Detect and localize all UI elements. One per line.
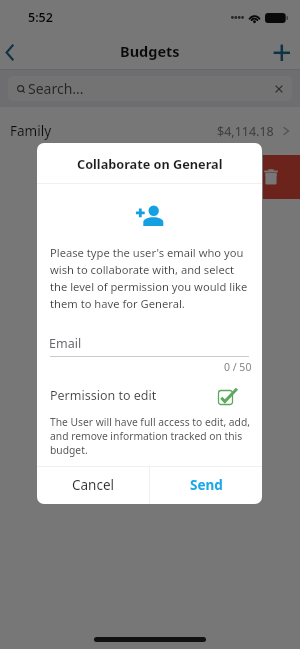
button[interactable]: Send (150, 466, 262, 504)
staticText: Email (49, 335, 82, 352)
staticText: 5:52 (28, 9, 53, 26)
staticText: Family (10, 122, 52, 140)
staticText: 0 / 50 (224, 360, 252, 374)
staticText: Collaborate on General (77, 155, 223, 172)
button[interactable]: Permission to edit (50, 384, 238, 406)
staticText: Permission to edit (50, 387, 157, 404)
button[interactable]: Delete (263, 155, 300, 199)
button[interactable]: Search... (8, 76, 292, 101)
staticText: $4,114.18 (217, 123, 274, 140)
staticText: Cancel (72, 476, 115, 494)
button[interactable]: Add budget (268, 37, 296, 65)
staticText: The User will have full access to edit, … (50, 415, 253, 457)
button[interactable]: Clear search (272, 82, 286, 96)
staticText: Budgets (120, 41, 180, 61)
button[interactable]: Cancel (37, 466, 149, 504)
staticText: Search... (28, 79, 84, 98)
staticText: Please type the user's email who you wis… (50, 245, 251, 311)
button[interactable]: Family (0, 110, 300, 152)
staticText: Send (190, 476, 223, 494)
button[interactable]: Back (0, 34, 34, 68)
